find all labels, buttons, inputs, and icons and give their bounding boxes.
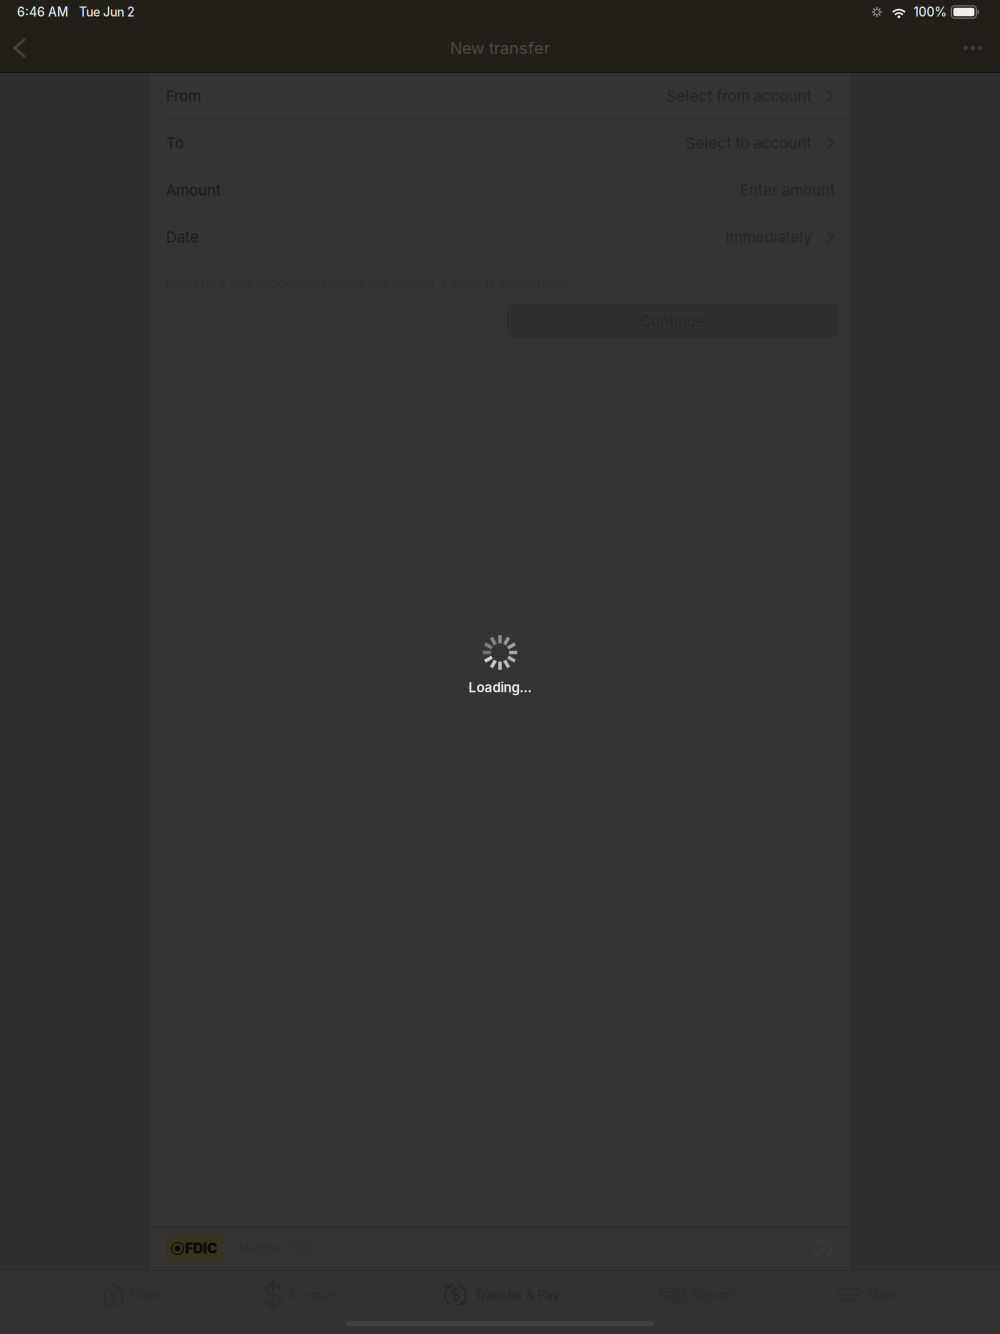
staticText: Select from account (666, 87, 811, 105)
staticText: Date (166, 228, 199, 246)
button[interactable]: Back (0, 26, 40, 70)
button[interactable]: $ (443, 1272, 559, 1318)
staticText: From (166, 87, 201, 105)
staticText: $ (450, 1284, 461, 1305)
staticText: FDIC (185, 1240, 217, 1257)
staticText: Transfer & Pay (474, 1287, 559, 1302)
staticText: Amount (166, 181, 221, 199)
staticText: Continue (640, 312, 705, 330)
button[interactable]: More options (953, 26, 993, 70)
staticText: 6:46 AM (17, 4, 68, 19)
staticText: Enter amount (740, 181, 835, 199)
staticText: Immediately (725, 228, 811, 246)
staticText: Select to account (685, 134, 811, 152)
staticText: 100% (913, 4, 946, 19)
staticText: To (166, 134, 184, 152)
staticText: New transfer (450, 38, 550, 58)
staticText: Tue Jun 2 (79, 4, 135, 19)
staticText: Loading... (468, 679, 531, 695)
